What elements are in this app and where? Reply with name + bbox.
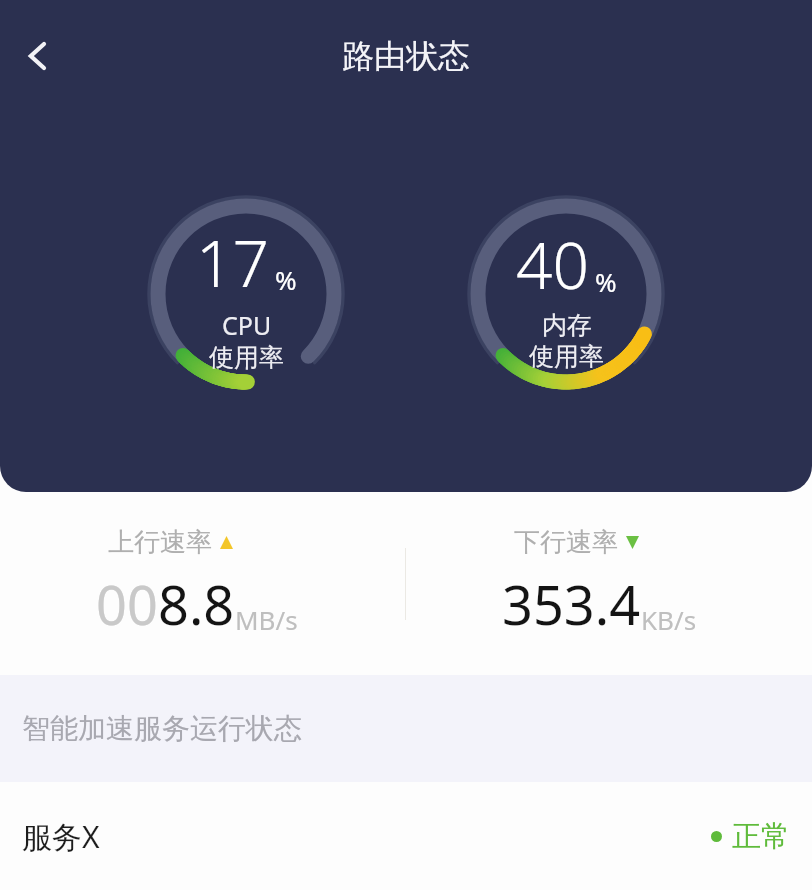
staticText: 内存 bbox=[542, 310, 592, 341]
staticText: % bbox=[595, 264, 617, 299]
staticText: 上行速率 bbox=[108, 526, 212, 559]
staticText: 使用率 bbox=[209, 342, 284, 373]
staticText: 353.4 bbox=[502, 567, 641, 641]
staticText: 使用率 bbox=[529, 341, 604, 372]
staticText: 8.8 bbox=[158, 567, 235, 641]
staticText: 17 bbox=[196, 219, 270, 306]
staticText: % bbox=[275, 262, 297, 297]
button[interactable]: Back bbox=[6, 24, 70, 88]
staticText: 智能加速服务运行状态 bbox=[22, 711, 302, 746]
staticText: CPU bbox=[222, 308, 272, 342]
button[interactable]: 上行速率 bbox=[0, 492, 405, 675]
staticText: 正常 bbox=[732, 818, 790, 855]
staticText: 路由状态 bbox=[342, 36, 470, 76]
staticText: 服务X bbox=[22, 816, 100, 857]
staticText: 40 bbox=[516, 221, 590, 308]
button[interactable]: 下行速率 bbox=[406, 492, 812, 675]
staticText: MB/s bbox=[235, 602, 298, 637]
staticText: 00 bbox=[96, 567, 158, 641]
staticText: 下行速率 bbox=[514, 526, 618, 559]
button[interactable]: 服务X bbox=[0, 782, 812, 890]
staticText: KB/s bbox=[641, 602, 697, 637]
